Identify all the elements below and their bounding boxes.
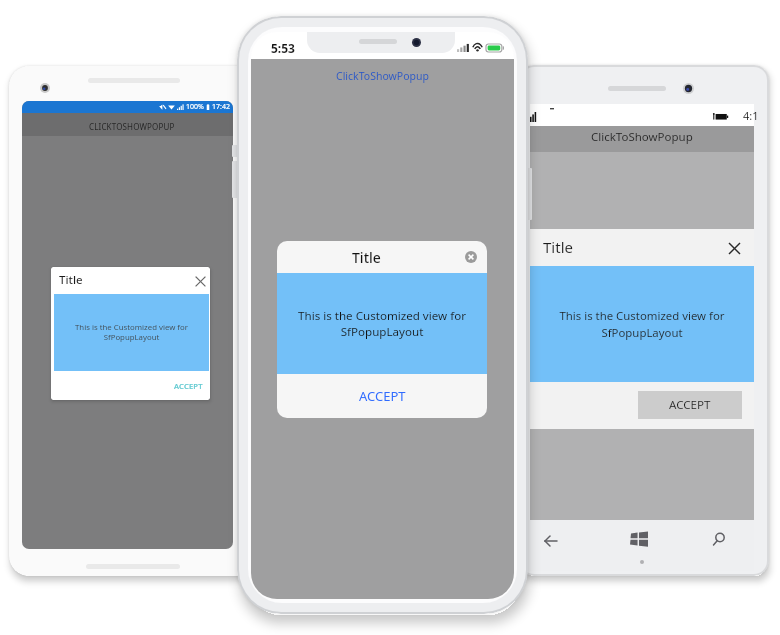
button[interactable]: ACCEPT	[638, 391, 742, 419]
button[interactable]: ClickToShowPopup	[332, 67, 433, 85]
staticText: 4:1	[743, 108, 759, 123]
staticText: ACCEPT	[359, 387, 406, 405]
button[interactable]: Start	[626, 526, 652, 552]
button[interactable]: Close	[192, 273, 208, 289]
button[interactable]: Back	[536, 528, 560, 552]
staticText: 5:53	[271, 40, 295, 56]
button[interactable]: ClickToShowPopup	[530, 126, 754, 152]
staticText: ACCEPT	[174, 381, 203, 391]
button[interactable]: CLICKTOSHOWPOPUP	[22, 113, 233, 136]
staticText: This is the Customized view for SfPopupL…	[75, 322, 188, 342]
button[interactable]: Close	[465, 251, 477, 263]
staticText: This is the Customized view for SfPopupL…	[298, 308, 466, 339]
button[interactable]: Close	[726, 240, 742, 256]
staticText: Title	[543, 237, 573, 257]
button[interactable]: ACCEPT	[174, 381, 203, 391]
button[interactable]: Search	[710, 528, 734, 552]
staticText: CLICKTOSHOWPOPUP	[89, 121, 175, 132]
staticText: ClickToShowPopup	[336, 69, 429, 83]
button[interactable]: ACCEPT	[277, 374, 487, 418]
staticText: 17:42	[212, 102, 230, 112]
staticText: Title	[352, 248, 381, 267]
staticText: Title	[59, 272, 83, 288]
staticText: 100%	[186, 102, 204, 112]
staticText: ClickToShowPopup	[591, 129, 693, 145]
staticText: ACCEPT	[669, 397, 711, 413]
staticText: This is the Customized view for SfPopupL…	[559, 308, 725, 340]
